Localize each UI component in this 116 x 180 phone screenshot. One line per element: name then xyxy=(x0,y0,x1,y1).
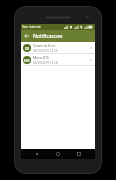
staticText: HO xyxy=(24,58,30,63)
button[interactable]: Home xyxy=(53,149,63,159)
button[interactable]: Open notification xyxy=(87,57,93,63)
button[interactable]: Back xyxy=(21,30,33,42)
staticText: Notificacoes xyxy=(33,33,63,40)
button[interactable]: DI xyxy=(21,42,95,53)
button[interactable]: Recent apps xyxy=(74,149,84,159)
staticText: Sem internet xyxy=(22,25,41,29)
button[interactable]: HO xyxy=(21,54,95,65)
staticText: 04/10/2019 13:25 xyxy=(33,49,58,53)
staticText: Down to Erro xyxy=(33,43,56,48)
staticText: Moto DIS xyxy=(33,55,49,60)
button[interactable]: Open notification xyxy=(87,45,93,51)
button[interactable]: Back xyxy=(32,149,42,159)
staticText: DI xyxy=(25,46,29,51)
staticText: 04/10/2019 13:18 xyxy=(33,61,58,65)
